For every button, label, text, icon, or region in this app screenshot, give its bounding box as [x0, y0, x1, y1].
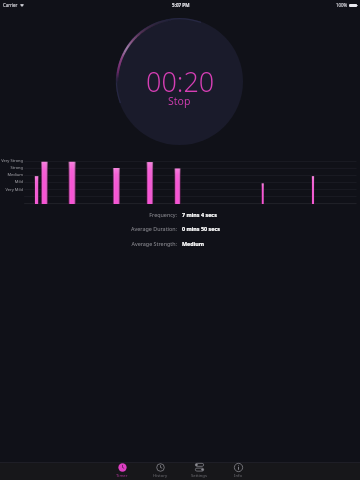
staticText: Medium: [7, 172, 23, 177]
staticText: 5:07 PM: [172, 2, 190, 8]
button[interactable]: Settings: [182, 463, 216, 479]
staticText: Very Strong: [1, 158, 23, 163]
staticText: History: [153, 473, 168, 479]
staticText: 7 mins 4 secs: [182, 211, 217, 218]
staticText: Medium: [182, 240, 205, 247]
staticText: Very Mild: [5, 187, 23, 192]
staticText: Frequency:: [149, 211, 177, 218]
staticText: 00:20: [146, 63, 215, 100]
staticText: 0 mins 50 secs: [182, 225, 220, 232]
button[interactable]: 00:20: [116, 18, 243, 145]
staticText: Settings: [191, 473, 207, 479]
button[interactable]: Timer: [105, 463, 139, 479]
button[interactable]: History: [143, 463, 177, 479]
staticText: Info: [234, 473, 242, 479]
staticText: Average Duration:: [131, 225, 177, 232]
staticText: Mild: [14, 179, 23, 184]
staticText: Carrier: [3, 2, 18, 8]
staticText: Timer: [116, 473, 128, 479]
button[interactable]: Info: [221, 463, 255, 479]
staticText: 100%: [336, 2, 348, 8]
staticText: Average Strength:: [131, 240, 177, 247]
staticText: Stop: [168, 94, 191, 108]
staticText: Strong: [10, 165, 23, 170]
